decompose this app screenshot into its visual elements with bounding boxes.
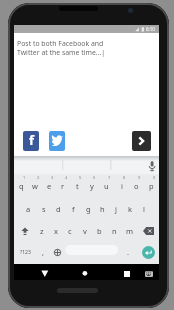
button[interactable]: 9 — [129, 174, 144, 196]
button[interactable]: 6 — [84, 174, 99, 196]
button[interactable]: , — [36, 241, 51, 263]
staticText: g — [86, 204, 91, 214]
button[interactable]: 1 — [14, 174, 28, 196]
button[interactable]: f — [23, 131, 39, 151]
staticText: a — [26, 204, 31, 214]
button[interactable]: 8 — [114, 174, 129, 196]
button[interactable]: ?123 — [14, 241, 36, 263]
staticText: h — [100, 204, 105, 214]
staticText: f — [72, 204, 75, 214]
staticText: 6 — [93, 175, 96, 180]
staticText: n — [112, 226, 117, 236]
button[interactable] — [111, 264, 159, 280]
staticText: t — [76, 181, 79, 191]
button[interactable]: 0 — [144, 174, 159, 196]
button[interactable] — [142, 246, 155, 259]
staticText: 4 — [65, 175, 68, 180]
staticText: m — [126, 226, 134, 236]
staticText: q — [19, 181, 24, 191]
button[interactable]: v — [77, 220, 92, 242]
button[interactable]: s — [36, 198, 51, 220]
staticText: b — [97, 226, 102, 236]
button[interactable]: l — [137, 198, 151, 220]
staticText: d — [56, 204, 61, 214]
button[interactable]: 4 — [56, 174, 70, 196]
button[interactable]: h — [95, 198, 109, 220]
staticText: y — [90, 181, 94, 191]
staticText: l — [143, 204, 145, 214]
button[interactable]: b — [92, 220, 107, 242]
staticText: i — [121, 181, 123, 191]
button[interactable]: g — [81, 198, 95, 220]
button[interactable]: 7 — [99, 174, 114, 196]
staticText: e — [47, 181, 52, 191]
button[interactable]: k — [123, 198, 137, 220]
button[interactable]: . — [121, 241, 136, 263]
button[interactable] — [146, 160, 158, 172]
staticText: v — [83, 226, 87, 236]
staticText: w — [32, 181, 38, 191]
button[interactable] — [51, 241, 64, 263]
button[interactable]: c — [63, 220, 77, 242]
staticText: 9 — [138, 175, 141, 180]
staticText: 0 — [153, 175, 156, 180]
button[interactable] — [137, 220, 159, 242]
staticText: 6:10 — [146, 26, 155, 32]
button[interactable] — [14, 220, 35, 242]
staticText: u — [104, 181, 109, 191]
button[interactable]: 2 — [28, 174, 42, 196]
button[interactable]: x — [49, 220, 63, 242]
button[interactable]: j — [109, 198, 123, 220]
button[interactable]: d — [51, 198, 66, 220]
button[interactable] — [14, 264, 63, 280]
button[interactable] — [132, 131, 151, 151]
staticText: j — [115, 204, 117, 214]
staticText: 2 — [37, 175, 40, 180]
staticText: 8 — [123, 175, 126, 180]
button[interactable] — [49, 131, 65, 151]
staticText: 7 — [108, 175, 111, 180]
staticText: o — [134, 181, 139, 191]
button[interactable] — [63, 264, 111, 280]
button[interactable]: 3 — [42, 174, 56, 196]
staticText: 5 — [79, 175, 82, 180]
staticText: . — [127, 247, 130, 257]
button[interactable]: a — [21, 198, 36, 220]
staticText: ?123 — [20, 249, 31, 256]
staticText: k — [128, 204, 133, 214]
staticText: 3 — [51, 175, 54, 180]
staticText: Post to both Facebook and Twitter at the… — [17, 39, 106, 57]
staticText: , — [42, 247, 45, 257]
staticText: x — [54, 226, 58, 236]
button[interactable]: z — [35, 220, 49, 242]
staticText: 1 — [23, 175, 26, 180]
staticText: c — [68, 226, 72, 236]
staticText: f — [29, 131, 35, 149]
button[interactable]: n — [107, 220, 122, 242]
button[interactable]: f — [66, 198, 81, 220]
staticText: p — [149, 181, 154, 191]
staticText: s — [42, 204, 46, 214]
button[interactable]: 5 — [70, 174, 84, 196]
staticText: r — [61, 181, 65, 191]
button[interactable]: m — [122, 220, 137, 242]
staticText: z — [40, 226, 44, 236]
